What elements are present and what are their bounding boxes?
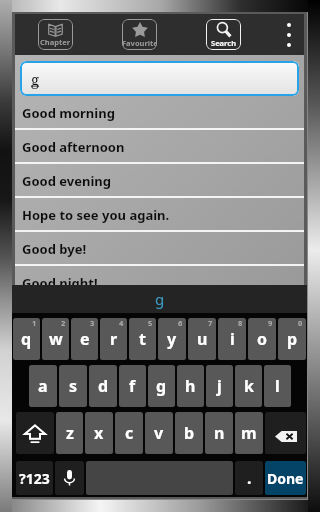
button[interactable]: d xyxy=(89,365,117,407)
button[interactable]: n xyxy=(205,412,233,454)
button[interactable]: v xyxy=(145,412,173,454)
button[interactable]: w xyxy=(42,318,69,360)
staticText: Good evening xyxy=(22,172,111,190)
button[interactable]: g xyxy=(20,61,299,96)
button[interactable]: l xyxy=(264,365,291,407)
staticText: 5 xyxy=(148,318,153,328)
button[interactable]: c xyxy=(115,412,143,454)
button[interactable]: o xyxy=(248,318,276,360)
staticText: 6 xyxy=(178,318,183,328)
staticText: Chapter xyxy=(40,37,71,47)
staticText: h xyxy=(185,375,196,397)
button[interactable]: Good evening xyxy=(15,164,304,198)
staticText: r xyxy=(110,328,118,350)
button[interactable]: Chapter xyxy=(38,19,73,50)
staticText: 9 xyxy=(268,318,273,328)
staticText: f xyxy=(129,375,136,397)
staticText: 2 xyxy=(61,318,66,328)
staticText: g xyxy=(31,69,40,89)
staticText: l xyxy=(275,375,280,397)
staticText: i xyxy=(230,328,235,350)
button[interactable]: y xyxy=(158,318,186,360)
staticText: m xyxy=(241,422,257,444)
staticText: a xyxy=(38,375,48,397)
staticText: x xyxy=(94,422,104,444)
button[interactable]: r xyxy=(100,318,127,360)
staticText: 7 xyxy=(208,318,213,328)
button[interactable]: ?123 xyxy=(16,461,53,495)
staticText: p xyxy=(287,328,298,350)
staticText: ?123 xyxy=(19,469,50,488)
staticText: 0 xyxy=(298,318,303,328)
button[interactable]: . xyxy=(235,461,263,495)
button[interactable]: b xyxy=(175,412,203,454)
button[interactable]: More options xyxy=(278,14,299,55)
button[interactable]: i xyxy=(218,318,246,360)
button[interactable]: Good night! xyxy=(15,266,304,285)
button[interactable]: a xyxy=(29,365,57,407)
staticText: Favourite xyxy=(122,38,157,48)
button[interactable]: p xyxy=(278,318,306,360)
button[interactable]: Voice input xyxy=(55,461,84,495)
button[interactable]: Good afternoon xyxy=(15,130,304,164)
staticText: Search xyxy=(211,38,237,48)
staticText: w xyxy=(49,328,63,350)
staticText: u xyxy=(197,328,208,350)
staticText: n xyxy=(214,422,225,444)
button[interactable]: Shift xyxy=(16,412,54,454)
button[interactable]: Backspace xyxy=(265,412,306,454)
button[interactable]: Good morning xyxy=(15,96,304,130)
staticText: b xyxy=(184,422,195,444)
button[interactable]: q xyxy=(13,318,40,360)
staticText: 4 xyxy=(119,318,124,328)
staticText: v xyxy=(154,422,164,444)
staticText: Good afternoon xyxy=(22,138,125,156)
button[interactable]: Hope to see you again. xyxy=(15,198,304,232)
button[interactable]: s xyxy=(59,365,87,407)
button[interactable]: x xyxy=(85,412,113,454)
button[interactable]: Done xyxy=(265,461,306,495)
button[interactable]: e xyxy=(71,318,98,360)
button[interactable]: j xyxy=(206,365,233,407)
button[interactable]: Search xyxy=(206,19,241,50)
button[interactable]: z xyxy=(56,412,83,454)
staticText: z xyxy=(66,422,74,444)
staticText: j xyxy=(217,375,222,397)
button[interactable]: t xyxy=(129,318,156,360)
staticText: q xyxy=(21,328,32,350)
staticText: t xyxy=(139,328,146,350)
button[interactable]: Favourite xyxy=(122,19,157,50)
staticText: . xyxy=(247,467,252,489)
staticText: Hope to see you again. xyxy=(22,206,170,224)
button[interactable]: f xyxy=(119,365,146,407)
staticText: 1 xyxy=(32,318,37,328)
staticText: Good bye! xyxy=(22,240,87,258)
button[interactable]: Good bye! xyxy=(15,232,304,266)
button[interactable]: g xyxy=(148,365,175,407)
button[interactable]: m xyxy=(235,412,263,454)
staticText: g xyxy=(155,289,165,309)
staticText: s xyxy=(69,375,78,397)
button[interactable]: u xyxy=(188,318,216,360)
staticText: e xyxy=(80,328,90,350)
staticText: y xyxy=(167,328,177,350)
button[interactable]: k xyxy=(235,365,262,407)
staticText: Good night! xyxy=(22,274,98,285)
staticText: o xyxy=(257,328,268,350)
staticText: d xyxy=(98,375,109,397)
staticText: Done xyxy=(267,469,304,488)
staticText: Good morning xyxy=(22,104,115,122)
staticText: 8 xyxy=(238,318,243,328)
staticText: k xyxy=(244,375,254,397)
button[interactable]: h xyxy=(177,365,204,407)
staticText: c xyxy=(125,422,134,444)
staticText: 3 xyxy=(90,318,95,328)
staticText: g xyxy=(156,375,167,397)
